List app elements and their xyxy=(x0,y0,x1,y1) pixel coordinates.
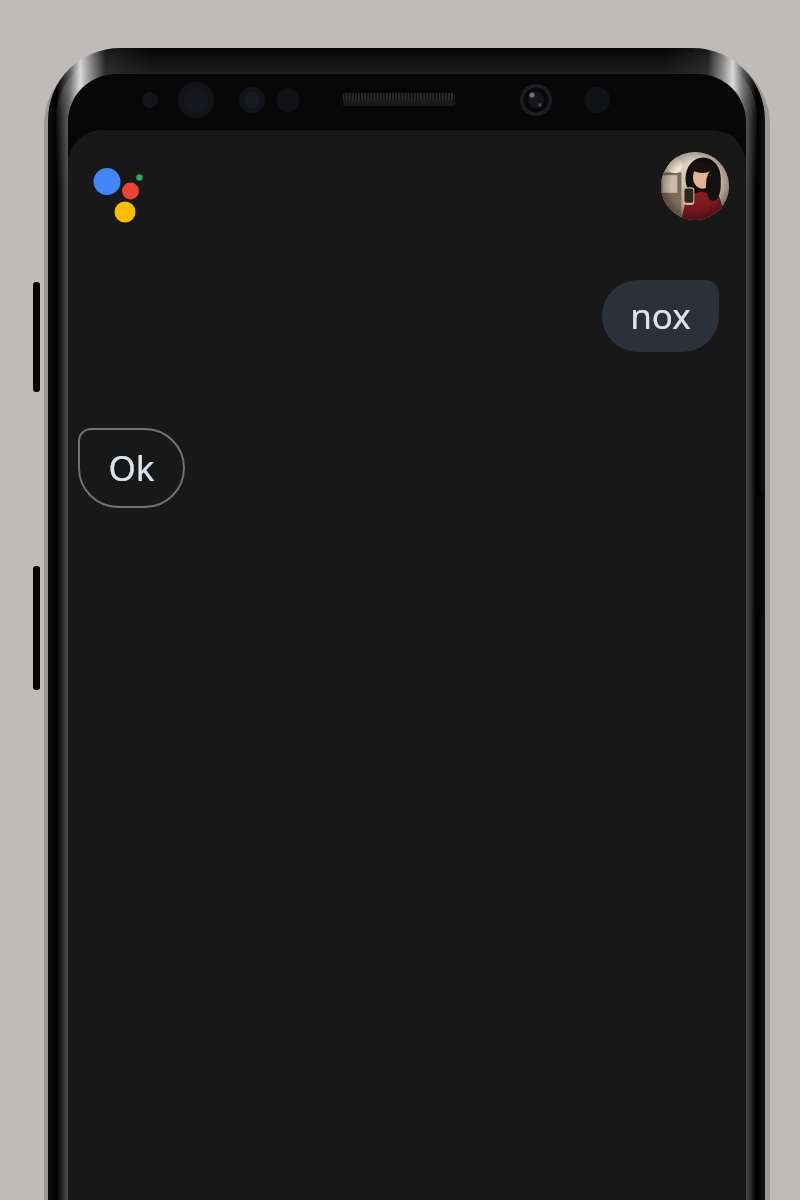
button[interactable]: Google Assistant xyxy=(84,158,146,220)
staticText: nox xyxy=(630,292,691,340)
button[interactable]: Ok xyxy=(78,428,185,508)
button[interactable]: nox xyxy=(602,280,719,352)
button[interactable]: Account profile photo xyxy=(661,152,729,220)
staticText: Ok xyxy=(108,444,155,492)
